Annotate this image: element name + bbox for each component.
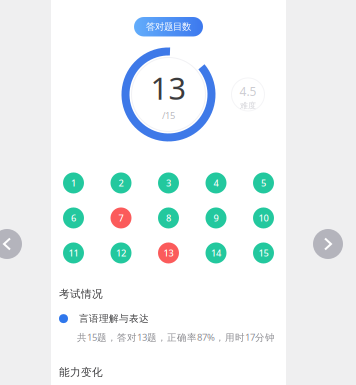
button[interactable]: 15 bbox=[253, 242, 274, 263]
staticText: 4.5 bbox=[239, 83, 256, 100]
staticText: 10 bbox=[258, 212, 268, 224]
button[interactable]: 6 bbox=[63, 207, 84, 228]
staticText: 12 bbox=[116, 247, 126, 259]
button[interactable]: 9 bbox=[205, 207, 226, 228]
staticText: 11 bbox=[68, 247, 78, 259]
staticText: 6 bbox=[71, 212, 76, 224]
button[interactable]: 3 bbox=[158, 172, 179, 193]
button[interactable]: 4 bbox=[205, 172, 226, 193]
button[interactable]: 14 bbox=[205, 242, 226, 263]
button[interactable]: 13 bbox=[158, 242, 179, 263]
staticText: 8 bbox=[166, 212, 171, 224]
button[interactable]: 7 bbox=[110, 207, 131, 228]
staticText: 难度 bbox=[240, 101, 256, 111]
staticText: /15 bbox=[162, 109, 175, 121]
staticText: 言语理解与表达 bbox=[79, 313, 149, 325]
staticText: 考试情况 bbox=[59, 287, 103, 301]
staticText: 能力变化 bbox=[59, 366, 103, 379]
button[interactable]: 5 bbox=[253, 172, 274, 193]
staticText: 5 bbox=[261, 177, 266, 189]
button[interactable]: 2 bbox=[110, 172, 131, 193]
staticText: 9 bbox=[213, 212, 218, 224]
button[interactable]: 10 bbox=[253, 207, 274, 228]
staticText: 4 bbox=[213, 177, 218, 189]
button[interactable]: 12 bbox=[110, 242, 131, 263]
staticText: 3 bbox=[166, 177, 171, 189]
staticText: 1 bbox=[71, 177, 76, 189]
button[interactable]: 1 bbox=[63, 172, 84, 193]
staticText: 共15题，答对13题，正确率87%，用时17分钟 bbox=[77, 331, 275, 344]
button[interactable]: 11 bbox=[63, 242, 84, 263]
staticText: 7 bbox=[118, 212, 123, 224]
button[interactable]: 8 bbox=[158, 207, 179, 228]
button[interactable]: Previous bbox=[0, 229, 22, 259]
staticText: 14 bbox=[211, 247, 221, 259]
staticText: 13 bbox=[163, 247, 173, 259]
staticText: 13 bbox=[150, 67, 186, 108]
button[interactable]: Next bbox=[313, 229, 343, 259]
staticText: 答对题目数 bbox=[146, 21, 191, 32]
staticText: 15 bbox=[258, 247, 268, 259]
staticText: 2 bbox=[118, 177, 123, 189]
